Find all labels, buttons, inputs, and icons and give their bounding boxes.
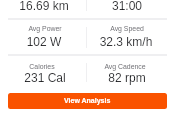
staticText: 102 W	[0, 35, 89, 48]
staticText: 16.69 km	[0, 0, 89, 12]
staticText: 231 Cal	[0, 71, 90, 84]
button[interactable]: View Analysis	[8, 93, 167, 109]
staticText: Calories	[0, 63, 87, 71]
staticText: 82 rpm	[82, 71, 172, 84]
staticText: Avg Speed	[82, 25, 172, 33]
staticText: 32.3 km/h	[81, 35, 171, 48]
staticText: Avg Power	[0, 25, 90, 33]
staticText: Avg Cadence	[80, 63, 170, 71]
staticText: 31:00	[82, 0, 172, 12]
staticText: View Analysis	[64, 97, 111, 105]
